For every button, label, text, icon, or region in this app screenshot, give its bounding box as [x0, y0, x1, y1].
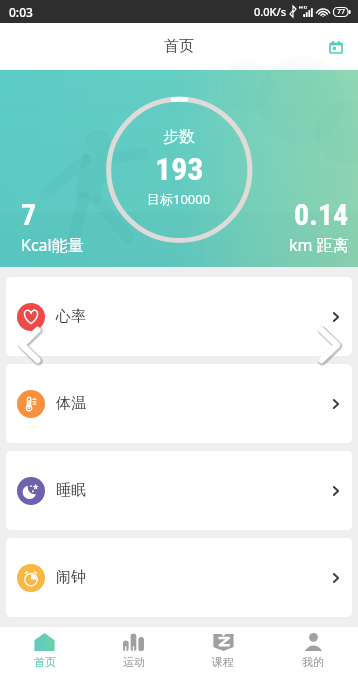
staticText: 我的	[302, 655, 324, 669]
staticText: 步数	[163, 127, 195, 147]
staticText: 课程	[212, 655, 234, 669]
staticText: 193	[155, 150, 204, 188]
button[interactable]: 课程	[178, 627, 268, 674]
staticText: 睡眠	[56, 481, 86, 500]
staticText: 心率	[56, 307, 86, 326]
staticText: 首页	[34, 655, 56, 669]
staticText: Kcal能量	[21, 234, 84, 256]
staticText: 0.0K/s	[254, 4, 287, 19]
button[interactable]: 首页	[0, 627, 89, 674]
button[interactable]: 闹钟	[6, 538, 352, 617]
staticText: 体温	[56, 394, 86, 413]
button[interactable]: 体温	[6, 364, 352, 443]
staticText: 闹钟	[56, 568, 86, 587]
staticText: 目标10000	[147, 190, 211, 208]
staticText: 0:03	[9, 4, 33, 20]
staticText: 运动	[123, 655, 145, 669]
staticText: km 距离	[289, 234, 349, 256]
button[interactable]: 我的	[268, 627, 358, 674]
staticText: 7	[21, 197, 37, 232]
button[interactable]: Next	[316, 326, 343, 364]
staticText: 0.14	[294, 197, 349, 232]
button[interactable]: 睡眠	[6, 451, 352, 530]
button[interactable]: 运动	[89, 627, 178, 674]
button[interactable]: 心率	[6, 277, 352, 356]
button[interactable]: Calendar	[321, 32, 351, 62]
staticText: 77	[337, 7, 346, 17]
staticText: 首页	[164, 37, 194, 56]
button[interactable]: Previous	[16, 326, 43, 364]
